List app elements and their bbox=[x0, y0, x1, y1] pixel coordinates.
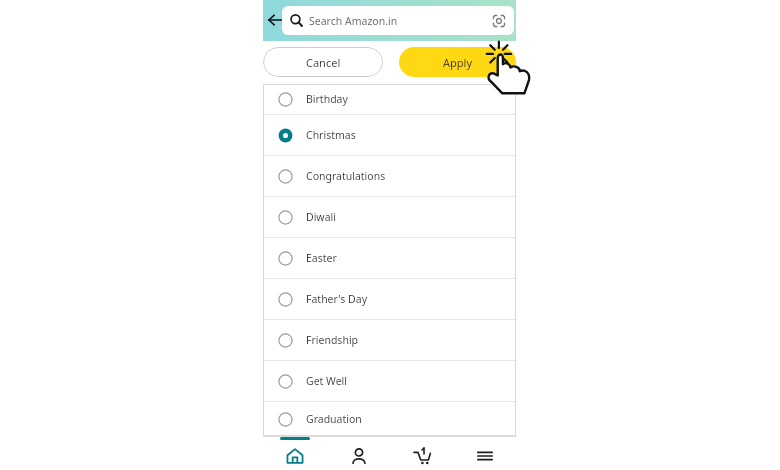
button[interactable]: Diwali bbox=[263, 197, 516, 237]
button[interactable]: Home bbox=[263, 436, 327, 470]
staticText: Congratulations bbox=[306, 169, 386, 183]
button[interactable]: Back bbox=[263, 8, 287, 32]
staticText: Graduation bbox=[306, 412, 362, 426]
button[interactable]: Friendship bbox=[263, 320, 516, 360]
staticText: Search Amazon.in bbox=[309, 14, 398, 28]
staticText: Friendship bbox=[306, 333, 359, 347]
button[interactable]: Get Well bbox=[263, 361, 516, 401]
button[interactable]: Scan bbox=[492, 14, 506, 28]
button[interactable]: Cart bbox=[390, 436, 453, 470]
button[interactable]: Congratulations bbox=[263, 156, 516, 196]
button[interactable]: Menu bbox=[453, 436, 516, 470]
button[interactable]: Christmas bbox=[263, 115, 516, 155]
button[interactable]: Father's Day bbox=[263, 279, 516, 319]
button[interactable]: Search Amazon.in bbox=[282, 6, 514, 35]
staticText: Diwali bbox=[306, 210, 336, 224]
staticText: Birthday bbox=[306, 92, 348, 106]
button[interactable]: Birthday bbox=[263, 84, 516, 114]
button[interactable]: Graduation bbox=[263, 402, 516, 436]
staticText: Get Well bbox=[306, 374, 347, 388]
button[interactable]: Account bbox=[327, 436, 390, 470]
button[interactable]: Easter bbox=[263, 238, 516, 278]
staticText: Christmas bbox=[306, 128, 356, 142]
button[interactable]: Apply bbox=[399, 47, 516, 77]
staticText: Easter bbox=[306, 251, 337, 265]
staticText: Father's Day bbox=[306, 292, 368, 306]
staticText: Cancel bbox=[306, 55, 341, 70]
staticText: Apply bbox=[443, 55, 473, 70]
button[interactable]: Cancel bbox=[263, 47, 383, 77]
